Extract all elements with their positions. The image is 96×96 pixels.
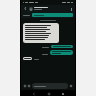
button[interactable] bbox=[32, 83, 68, 89]
button[interactable]: Add attachment bbox=[23, 84, 27, 88]
button[interactable]: Camera bbox=[27, 84, 31, 88]
button[interactable] bbox=[23, 23, 59, 43]
button[interactable]: Recent apps bbox=[60, 91, 65, 96]
button[interactable] bbox=[50, 50, 73, 55]
button[interactable] bbox=[34, 7, 69, 10]
button[interactable]: Contact avatar bbox=[29, 7, 33, 11]
button[interactable] bbox=[32, 13, 73, 17]
button[interactable] bbox=[23, 57, 32, 60]
button[interactable]: Home bbox=[46, 91, 51, 96]
button[interactable]: More options bbox=[69, 7, 73, 11]
button[interactable]: Back bbox=[23, 6, 28, 11]
button[interactable]: Send bbox=[69, 84, 73, 88]
button[interactable]: Back bbox=[31, 91, 36, 96]
button[interactable] bbox=[51, 45, 73, 48]
